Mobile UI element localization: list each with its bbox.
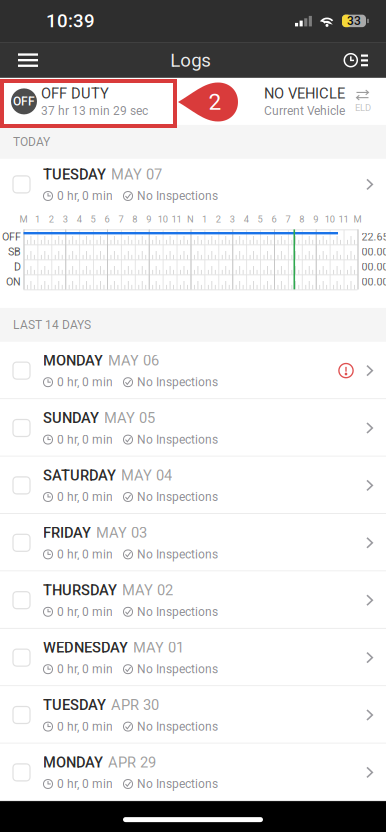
staticText: No Inspections [137,605,218,619]
staticText: 4 [77,214,82,225]
staticText: No Inspections [137,189,218,203]
staticText: MAY 04 [121,467,172,484]
staticText: OFF [2,231,21,243]
button[interactable]: Log history [327,43,386,78]
staticText: APR 30 [111,696,159,714]
staticText: 6 [271,214,276,225]
staticText: No Inspections [137,490,218,504]
staticText: TUESDAY [43,696,106,714]
staticText: 3 [230,214,235,225]
staticText: THURSDAY [43,582,117,599]
staticText: MONDAY [43,754,103,771]
staticText: OFF DUTY [41,85,109,102]
button[interactable]: OFF [0,78,176,125]
staticText: 1 [202,214,207,225]
staticText: FRIDAY [43,524,91,541]
staticText: 7 [285,214,290,225]
staticText: 33 [347,14,361,28]
button[interactable]: TUESDAY [0,159,386,210]
staticText: NO VEHICLE [264,85,345,102]
staticText: 00.00 [361,246,386,258]
staticText: No Inspections [137,375,218,389]
staticText: Logs [170,49,211,71]
staticText: 4 [244,214,249,225]
staticText: 0 hr, 0 min [57,720,113,734]
staticText: 00.00 [361,276,386,288]
staticText: MAY 06 [108,352,159,369]
staticText: 10 [158,214,168,225]
staticText: TODAY [13,135,50,149]
staticText: M [353,214,361,225]
button[interactable]: MONDAY [0,342,386,399]
staticText: 6 [104,214,109,225]
staticText: 7 [118,214,123,225]
staticText: D [14,261,21,273]
button[interactable]: Menu [0,43,54,78]
staticText: 9 [146,214,151,225]
staticText: 11 [172,214,182,225]
staticText: SUNDAY [43,409,99,427]
staticText: 0 hr, 0 min [57,777,113,791]
staticText: No Inspections [137,547,218,561]
staticText: APR 29 [108,754,156,771]
staticText: MAY 05 [104,409,155,427]
staticText: No Inspections [137,777,218,791]
staticText: OFF [13,94,35,108]
staticText: MAY 03 [96,524,147,541]
staticText: 0 hr, 0 min [57,662,113,676]
button[interactable]: SUNDAY [0,399,386,457]
staticText: 0 hr, 0 min [57,605,113,619]
staticText: No Inspections [137,662,218,676]
staticText: 8 [299,214,304,225]
staticText: No Inspections [137,720,218,734]
staticText: 0 hr, 0 min [57,490,113,504]
staticText: 0 hr, 0 min [57,433,113,447]
staticText: 22.65 [361,231,386,243]
staticText: 5 [258,214,263,225]
staticText: 10 [325,214,335,225]
staticText: 10:39 [46,10,95,32]
button[interactable]: THURSDAY [0,571,386,629]
staticText: 11 [339,214,349,225]
button[interactable]: MONDAY [0,744,386,801]
staticText: MAY 01 [133,639,184,656]
staticText: MONDAY [43,352,103,369]
staticText: Current Vehicle [264,104,345,118]
staticText: SB [8,246,21,258]
staticText: SATURDAY [43,467,116,484]
staticText: 5 [91,214,96,225]
staticText: M [19,214,27,225]
staticText: MAY 02 [122,582,173,599]
button[interactable]: NO VEHICLE [264,78,386,125]
staticText: MAY 07 [111,166,162,183]
staticText: 0 hr, 0 min [57,375,113,389]
staticText: 9 [313,214,318,225]
staticText: 8 [132,214,137,225]
button[interactable]: FRIDAY [0,514,386,571]
staticText: ELD [355,102,371,113]
staticText: 1 [35,214,40,225]
button[interactable]: TUESDAY [0,686,386,744]
button[interactable]: SATURDAY [0,457,386,514]
staticText: 0 hr, 0 min [57,189,113,203]
staticText: 0 hr, 0 min [57,547,113,561]
staticText: 37 hr 13 min 29 sec [41,104,148,118]
staticText: 2 [208,89,221,115]
button[interactable]: WEDNESDAY [0,629,386,686]
staticText: 2 [216,214,221,225]
staticText: TUESDAY [43,166,106,183]
staticText: ON [6,276,21,288]
staticText: WEDNESDAY [43,639,128,656]
staticText: 2 [49,214,54,225]
staticText: LAST 14 DAYS [13,318,91,332]
staticText: 3 [63,214,68,225]
staticText: 00.00 [361,261,386,273]
staticText: N [187,214,194,225]
staticText: No Inspections [137,433,218,447]
